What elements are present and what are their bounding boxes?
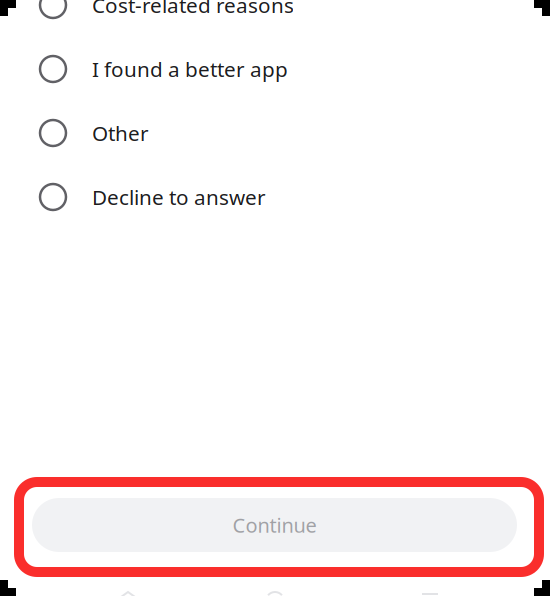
button[interactable]: Decline to answer	[0, 165, 550, 229]
staticText: Decline to answer	[92, 183, 266, 211]
staticText: Continue	[232, 511, 316, 539]
button[interactable]: I found a better app	[0, 37, 550, 101]
staticText: Other	[92, 119, 149, 147]
button[interactable]: Cost-related reasons	[0, 0, 550, 37]
staticText: I found a better app	[92, 55, 288, 83]
button[interactable]: Other	[0, 101, 550, 165]
staticText: Cost-related reasons	[92, 0, 294, 19]
button[interactable]: Continue	[32, 498, 517, 552]
